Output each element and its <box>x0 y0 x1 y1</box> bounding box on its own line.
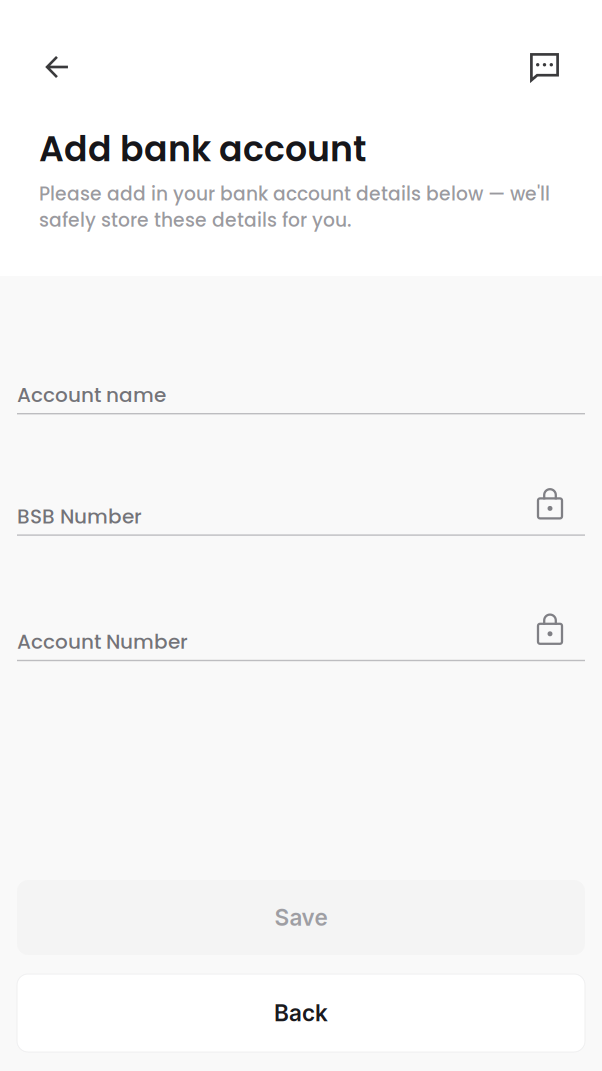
staticText: Save <box>274 904 327 931</box>
staticText: Account Number <box>17 628 188 656</box>
button[interactable]: Account name <box>17 357 585 414</box>
staticText: Add bank account <box>39 125 366 173</box>
button[interactable]: Messages <box>520 43 568 91</box>
staticText: Back <box>274 999 328 1027</box>
button[interactable]: Back <box>33 43 81 91</box>
button[interactable]: BSB Number <box>17 478 585 536</box>
button[interactable]: Account Number <box>17 604 585 661</box>
staticText: Account name <box>17 381 166 409</box>
button[interactable]: Back <box>17 974 585 1052</box>
staticText: BSB Number <box>17 502 142 530</box>
button[interactable]: Save <box>17 880 585 955</box>
staticText: Please add in your bank account details … <box>39 181 550 233</box>
